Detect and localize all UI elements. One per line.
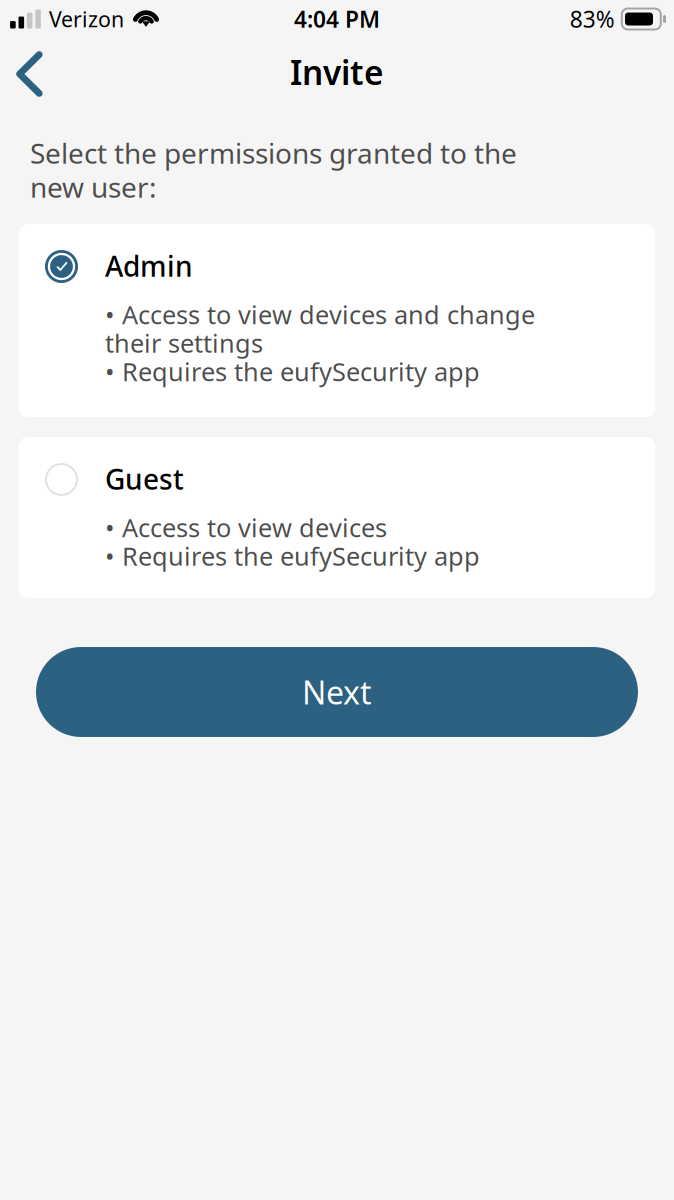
button[interactable]: Next bbox=[36, 647, 638, 737]
staticText: 4:04 PM bbox=[294, 4, 380, 34]
staticText: Admin bbox=[105, 247, 193, 285]
staticText: new user: bbox=[30, 168, 157, 206]
staticText: their settings bbox=[105, 326, 263, 360]
button[interactable]: Back bbox=[0, 40, 57, 104]
button[interactable]: Admin bbox=[19, 224, 655, 417]
staticText: • Access to view devices and change bbox=[105, 297, 535, 331]
staticText: Verizon bbox=[49, 5, 124, 33]
staticText: 83% bbox=[570, 4, 615, 34]
staticText: • Requires the eufySecurity app bbox=[105, 539, 480, 573]
staticText: • Access to view devices bbox=[105, 510, 387, 544]
staticText: • Requires the eufySecurity app bbox=[105, 355, 480, 388]
staticText: Guest bbox=[105, 460, 184, 498]
staticText: Next bbox=[302, 671, 372, 713]
staticText: Select the permissions granted to the bbox=[30, 134, 517, 172]
staticText: Invite bbox=[290, 50, 384, 94]
button[interactable]: Guest bbox=[19, 437, 655, 598]
